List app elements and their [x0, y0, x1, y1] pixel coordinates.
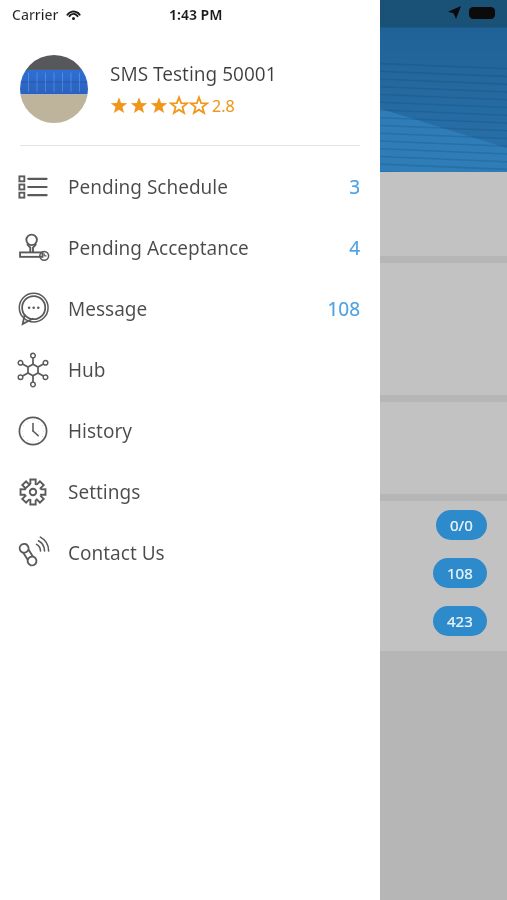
staticText: Pending Acceptance — [68, 235, 349, 261]
staticText: SMS Testing 50001 — [110, 61, 277, 87]
staticText: 0/0 — [450, 515, 473, 535]
staticText: Contact Us — [68, 540, 360, 566]
staticText: 3 — [349, 174, 360, 200]
button[interactable]: Message — [0, 278, 380, 339]
staticText: CHECK OUT — [16, 275, 88, 293]
button[interactable]: Contact Us — [0, 522, 380, 583]
button[interactable]: SMS Testing 50001 — [0, 55, 380, 123]
staticText: History — [68, 418, 360, 444]
staticText: 3 — [16, 208, 34, 249]
button[interactable]: Pending Schedule — [0, 156, 380, 217]
staticText: Ratio — [16, 416, 50, 435]
staticText: 2.8 — [212, 95, 235, 117]
staticText: Message — [68, 296, 327, 322]
staticText: 12 — [60, 416, 77, 435]
staticText: PENDING SCHEDULE — [16, 186, 143, 204]
staticText: 423 — [447, 611, 473, 631]
staticText: Settings — [68, 479, 360, 505]
staticText: Pending Schedule — [68, 174, 349, 200]
staticText: 4 — [349, 235, 360, 261]
button[interactable]: Hub — [0, 339, 380, 400]
button[interactable]: Settings — [0, 461, 380, 522]
staticText: Hub — [68, 357, 360, 383]
staticText: 2 — [16, 437, 35, 481]
button[interactable]: History — [0, 400, 380, 461]
staticText: 108 — [327, 296, 360, 322]
staticText: 1:43 PM — [169, 5, 223, 24]
button[interactable]: Pending Acceptance — [0, 217, 380, 278]
staticText: Carrier — [12, 5, 59, 24]
staticText: 108 — [447, 563, 473, 583]
